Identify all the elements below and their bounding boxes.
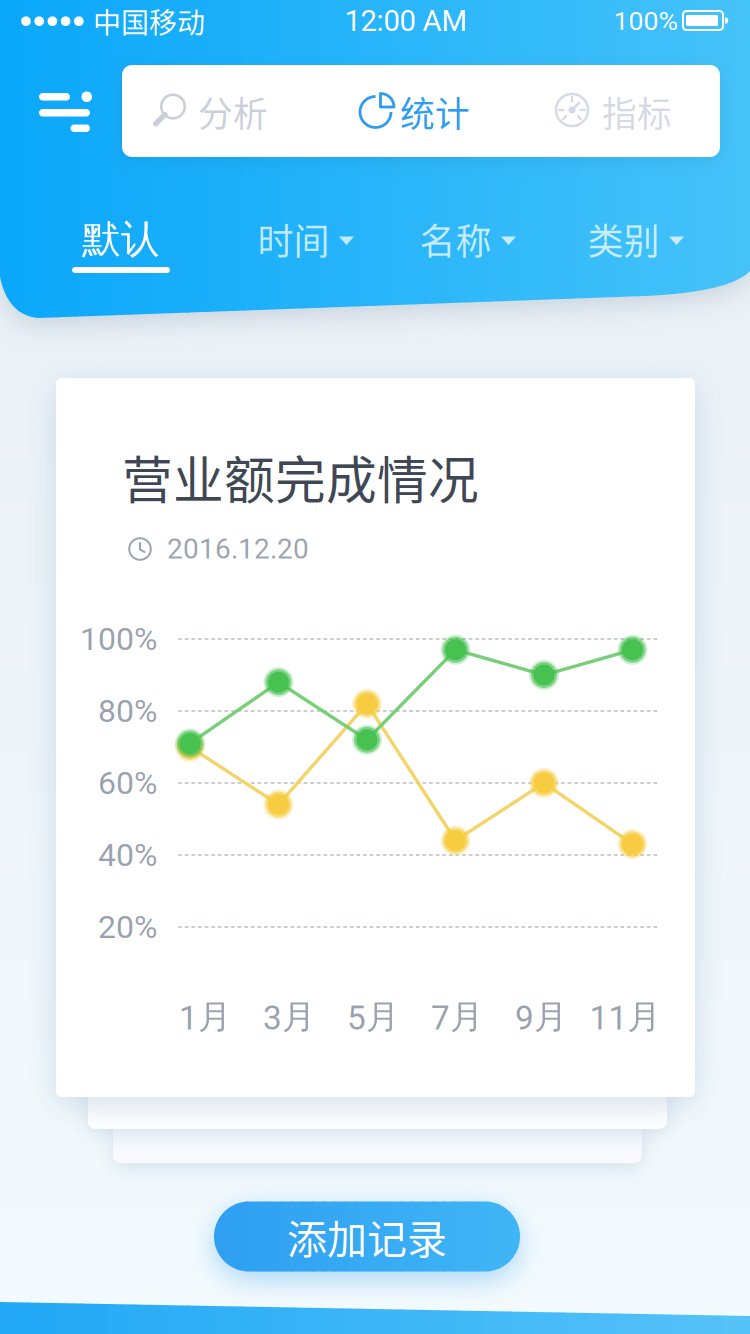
staticText: 类别 (587, 213, 659, 265)
staticText: 3月 (263, 996, 315, 1038)
staticText: 7月 (431, 996, 483, 1038)
staticText: 指标 (602, 87, 672, 137)
staticText: 11月 (589, 996, 660, 1038)
staticText: 营业额完成情况 (122, 440, 479, 514)
staticText: 9月 (515, 996, 567, 1038)
staticText: 分析 (198, 87, 268, 137)
staticText: 100% (613, 5, 678, 37)
staticText: 80% (98, 692, 157, 730)
staticText: 时间 (257, 213, 329, 265)
staticText: 统计 (400, 87, 470, 137)
staticText: 20% (98, 908, 157, 946)
staticText: 40% (98, 836, 157, 874)
staticText: 5月 (347, 996, 399, 1038)
staticText: 中国移动 (93, 1, 205, 41)
staticText: 12:00 AM (344, 4, 467, 38)
button[interactable]: Menu (39, 92, 92, 132)
staticText: 添加记录 (287, 1207, 447, 1265)
button[interactable]: 统计 (321, 65, 511, 157)
staticText: 100% (80, 620, 157, 658)
button[interactable]: 名称 (393, 203, 543, 275)
button[interactable]: 添加记录 (214, 1201, 520, 1271)
button[interactable]: 指标 (521, 65, 711, 157)
staticText: 1月 (179, 996, 231, 1038)
button[interactable]: 分析 (121, 65, 311, 157)
staticText: 60% (98, 764, 157, 802)
button[interactable]: 时间 (231, 203, 381, 275)
staticText: 2016.12.20 (167, 533, 309, 565)
staticText: 默认 (82, 215, 160, 263)
button[interactable]: 默认 (61, 208, 181, 280)
button[interactable]: 类别 (561, 203, 711, 275)
staticText: 名称 (419, 213, 491, 265)
